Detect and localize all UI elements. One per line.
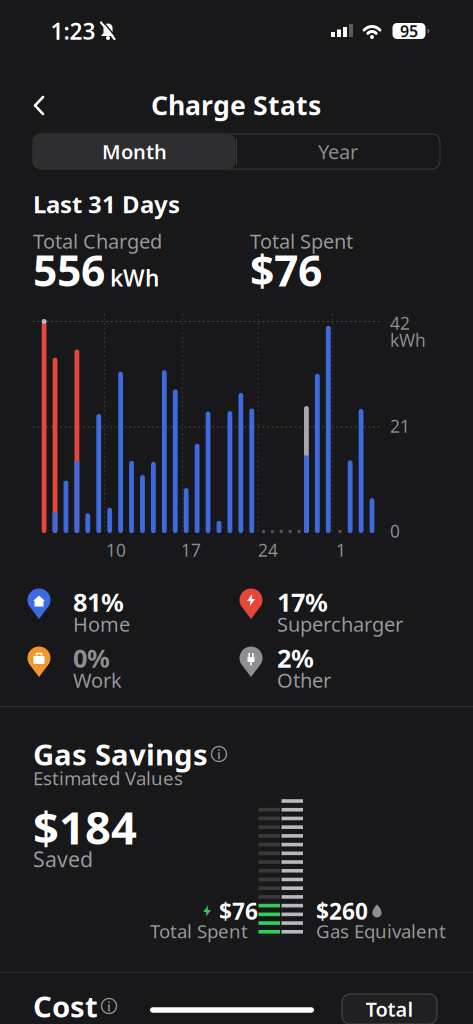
button[interactable]: Info <box>210 745 228 763</box>
staticText: Gas Equivalent <box>316 919 446 943</box>
button[interactable]: Total <box>342 994 437 1024</box>
staticText: Estimated Values <box>33 766 183 790</box>
button[interactable]: Month <box>33 134 235 169</box>
staticText: 0% <box>73 641 110 675</box>
staticText: Home <box>73 611 130 637</box>
staticText: Saved <box>33 845 93 873</box>
staticText: Total <box>365 996 413 1022</box>
staticText: Charge Stats <box>151 87 321 123</box>
staticText: $76 <box>250 242 322 298</box>
staticText: 17% <box>277 585 328 619</box>
staticText: i <box>217 745 221 763</box>
staticText: 21 <box>390 414 410 437</box>
staticText: 95 <box>400 20 418 42</box>
staticText: Other <box>277 667 331 693</box>
staticText: kWh <box>110 263 159 293</box>
staticText: $260 <box>316 896 368 926</box>
staticText: i <box>107 997 111 1015</box>
staticText: Total Spent <box>250 228 353 254</box>
staticText: 81% <box>73 585 124 619</box>
staticText: Supercharger <box>277 611 403 637</box>
staticText: Last 31 Days <box>33 188 180 220</box>
staticText: 17 <box>181 538 201 561</box>
staticText: Gas Savings <box>33 734 208 773</box>
staticText: Cost <box>33 986 98 1024</box>
staticText: Total Charged <box>33 228 162 254</box>
staticText: 2% <box>277 641 314 675</box>
staticText: Year <box>318 138 358 165</box>
staticText: 1 <box>336 538 346 561</box>
staticText: $184 <box>33 797 137 857</box>
staticText: Total Spent <box>150 919 248 943</box>
button[interactable]: Info <box>100 997 118 1015</box>
staticText: Month <box>102 138 167 165</box>
staticText: 1:23 <box>50 16 95 46</box>
staticText: 42 <box>390 311 410 334</box>
staticText: 556 <box>33 242 105 298</box>
staticText: 24 <box>258 538 278 561</box>
staticText: 0 <box>390 519 400 542</box>
staticText: 10 <box>106 538 126 561</box>
staticText: Work <box>73 667 122 693</box>
button[interactable]: Year <box>237 134 439 169</box>
button[interactable]: Back <box>25 91 53 119</box>
staticText: kWh <box>390 328 426 351</box>
staticText: $76 <box>219 896 258 926</box>
